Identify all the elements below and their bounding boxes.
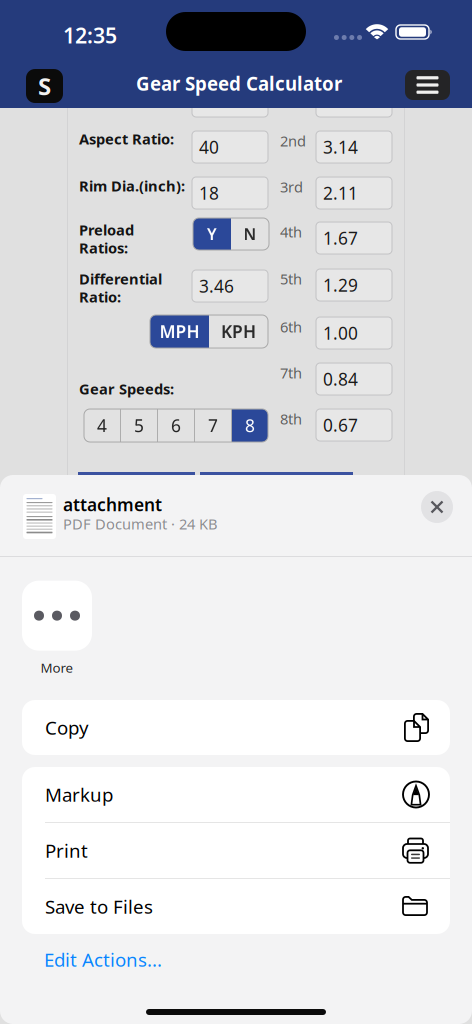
staticText: 7 xyxy=(208,414,218,437)
staticText: S xyxy=(38,70,51,102)
button[interactable]: Close xyxy=(421,491,453,523)
staticText: 4th xyxy=(280,222,302,241)
staticText: 6 xyxy=(171,414,181,437)
staticText: Save to Files xyxy=(45,894,153,919)
button[interactable]: Print xyxy=(22,823,450,878)
staticText: Aspect Ratio: xyxy=(79,129,174,148)
staticText: attachment xyxy=(63,493,162,516)
staticText: 18 xyxy=(199,181,219,204)
staticText: Rim Dia.(inch): xyxy=(79,176,185,195)
button[interactable]: Save to Files xyxy=(22,879,450,934)
button[interactable]: Menu xyxy=(405,70,450,100)
staticText: 3rd xyxy=(280,177,303,196)
staticText: 0.84 xyxy=(323,367,358,390)
button[interactable]: Site identity xyxy=(26,69,63,103)
staticText: KPH xyxy=(221,320,256,343)
staticText: 8th xyxy=(280,409,302,428)
staticText: Preload xyxy=(79,220,134,239)
staticText: 1.67 xyxy=(323,226,358,249)
staticText: 1.71 xyxy=(323,89,358,112)
staticText: 40 xyxy=(199,135,219,158)
staticText: 3.14 xyxy=(323,135,358,158)
button[interactable]: Markup xyxy=(22,767,450,822)
staticText: Print xyxy=(45,838,88,863)
staticText: Ratios: xyxy=(79,238,128,257)
staticText: 7th xyxy=(280,363,302,382)
staticText: N xyxy=(243,223,256,245)
button[interactable]: Copy xyxy=(22,700,450,755)
staticText: 5th xyxy=(280,269,302,288)
staticText: 8 xyxy=(245,414,255,437)
staticText: Y xyxy=(207,223,217,245)
staticText: 2nd xyxy=(280,131,306,150)
staticText: Gear Speeds: xyxy=(79,379,174,398)
staticText: Ratio: xyxy=(79,287,121,306)
staticText: 1.00 xyxy=(323,321,358,344)
staticText: Gear Speed Calculator xyxy=(136,71,342,96)
staticText: Markup xyxy=(45,782,113,807)
staticText: 2.11 xyxy=(323,181,358,204)
staticText: More xyxy=(40,659,73,676)
staticText: Copy xyxy=(45,715,89,740)
staticText: 1.29 xyxy=(323,273,358,296)
staticText: Edit Actions... xyxy=(44,947,162,972)
button[interactable]: More xyxy=(22,581,92,676)
staticText: 255 xyxy=(199,89,229,112)
staticText: 0.67 xyxy=(323,413,358,436)
staticText: 4 xyxy=(97,414,107,437)
staticText: 6th xyxy=(280,317,302,336)
staticText: Differential xyxy=(79,269,162,288)
staticText: 12:35 xyxy=(63,21,117,49)
staticText: PDF Document · 24 KB xyxy=(63,514,218,533)
staticText: 5 xyxy=(134,414,144,437)
staticText: 3.46 xyxy=(199,274,234,297)
button[interactable]: Edit Actions... xyxy=(0,937,178,982)
staticText: MPH xyxy=(159,320,199,343)
